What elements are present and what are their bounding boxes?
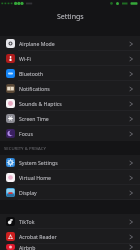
staticText: System Settings (19, 159, 58, 166)
staticText: Wi-Fi (19, 55, 31, 62)
staticText: Notifications (19, 85, 50, 92)
button[interactable]: Airplane Mode (0, 36, 140, 51)
staticText: SECURITY & PRIVACY (4, 145, 46, 151)
button[interactable]: TikTok (0, 214, 140, 229)
staticText: Airbnb (19, 244, 36, 250)
staticText: Airplane Mode (19, 40, 55, 47)
button[interactable]: Notifications (0, 81, 140, 96)
button[interactable]: Airbnb (0, 244, 140, 250)
button[interactable]: Display (0, 185, 140, 200)
staticText: Sounds & Haptics (19, 100, 62, 107)
button[interactable]: Acrobat Reader (0, 229, 140, 244)
staticText: Acrobat Reader (19, 233, 57, 240)
button[interactable]: Screen Time (0, 111, 140, 126)
button[interactable]: Focus (0, 126, 140, 141)
staticText: TikTok (19, 218, 35, 225)
staticText: Bluetooth (19, 70, 44, 77)
button[interactable]: Sounds & Haptics (0, 96, 140, 111)
button[interactable]: Bluetooth (0, 66, 140, 81)
staticText: Focus (19, 130, 34, 137)
staticText: Screen Time (19, 115, 49, 122)
button[interactable]: Wi-Fi (0, 51, 140, 66)
button[interactable]: System Settings (0, 155, 140, 170)
staticText: Settings (57, 12, 84, 22)
staticText: Display (19, 189, 37, 196)
staticText: Virtual Home (19, 174, 52, 181)
button[interactable]: Virtual Home (0, 170, 140, 185)
